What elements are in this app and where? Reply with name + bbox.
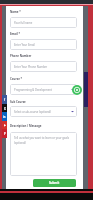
staticText: Description / Message <box>10 124 42 128</box>
button[interactable]: Tell us what you want to learn or your g… <box>10 132 77 176</box>
staticText: Select a sub-course (optional) <box>14 110 52 114</box>
staticText: X <box>4 107 6 111</box>
button[interactable]: Submit <box>33 179 76 187</box>
button[interactable]: Enter Your Email <box>10 39 77 50</box>
button[interactable]: X <box>2 104 7 113</box>
button[interactable]: Sub Course <box>10 100 26 104</box>
staticText: ▶ <box>4 124 6 127</box>
staticText: Submit <box>49 181 60 185</box>
staticText: Course * <box>10 77 23 81</box>
staticText: f <box>4 98 6 102</box>
button[interactable]: LinkedIn <box>2 112 7 121</box>
button[interactable]: Course * <box>10 77 23 81</box>
staticText: Email * <box>10 32 21 36</box>
button[interactable]: Chat on WhatsApp <box>72 85 82 95</box>
button[interactable]: Select a sub-course (optional) <box>10 106 77 117</box>
button[interactable]: Email * <box>10 32 21 36</box>
staticText: Enter Your Phone Number <box>14 65 48 69</box>
staticText: P <box>4 132 6 136</box>
button[interactable]: Description / Message <box>10 124 42 128</box>
staticText: in <box>3 115 6 119</box>
staticText: Enter Your Email <box>14 43 35 47</box>
staticText: Tell us what you want to learn or your g… <box>14 136 70 145</box>
staticText: Programming & Development <box>14 88 52 92</box>
button[interactable]: Name * <box>10 10 21 14</box>
button[interactable]: Phone Number <box>10 54 32 58</box>
staticText: Name * <box>10 10 21 14</box>
button[interactable]: Enter Your Phone Number <box>10 61 77 72</box>
button[interactable]: Pinterest <box>2 129 7 138</box>
button[interactable]: Programming & Development <box>10 84 77 95</box>
button[interactable]: Your full name <box>10 17 77 28</box>
staticText: Phone Number <box>10 54 32 58</box>
staticText: Your full name <box>14 21 33 25</box>
staticText: Sub Course <box>10 100 26 104</box>
button[interactable]: YouTube <box>2 121 7 130</box>
button[interactable]: Facebook <box>2 95 7 104</box>
